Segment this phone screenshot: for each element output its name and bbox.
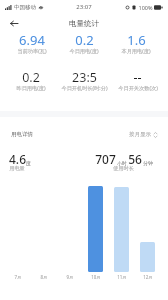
button[interactable]: Back — [7, 16, 21, 30]
staticText: 中国移动 — [14, 4, 36, 11]
staticText: 0.2 — [22, 69, 40, 86]
staticText: 昨日用电(度) — [16, 84, 46, 91]
staticText: 今日开关次数(次) — [118, 84, 158, 91]
staticText: 电量统计 — [69, 19, 99, 28]
staticText: 56 — [128, 151, 142, 167]
staticText: 用电量 — [9, 165, 25, 172]
staticText: 今日用电(度) — [69, 47, 99, 54]
staticText: 12月 — [138, 274, 158, 280]
staticText: 9月 — [60, 274, 80, 280]
staticText: 10月 — [86, 274, 106, 280]
staticText: 使用时长 — [113, 165, 134, 172]
staticText: 23:5 — [72, 69, 97, 86]
staticText: 今日开机时长(时:分) — [61, 84, 108, 91]
staticText: 100% — [138, 4, 153, 11]
staticText: 小时 — [117, 160, 127, 166]
staticText: 度 — [26, 160, 31, 166]
staticText: 23:07 — [76, 3, 92, 11]
staticText: 用电详情 — [11, 131, 33, 138]
staticText: 0.2 — [75, 31, 94, 49]
staticText: 按月显示 — [129, 131, 151, 138]
staticText: 4.6 — [9, 151, 26, 167]
staticText: 7月 — [8, 274, 28, 280]
staticText: 1.6 — [127, 31, 146, 49]
staticText: 11月 — [112, 274, 132, 280]
staticText: 本月用电(度) — [121, 47, 151, 54]
staticText: 分钟 — [143, 160, 153, 166]
button[interactable]: 按月显示 — [127, 130, 160, 139]
staticText: 6.94 — [19, 31, 45, 49]
staticText: -- — [133, 69, 142, 86]
staticText: 当前功率(瓦) — [17, 47, 47, 54]
staticText: 707 — [95, 151, 116, 167]
staticText: 8月 — [34, 274, 54, 280]
